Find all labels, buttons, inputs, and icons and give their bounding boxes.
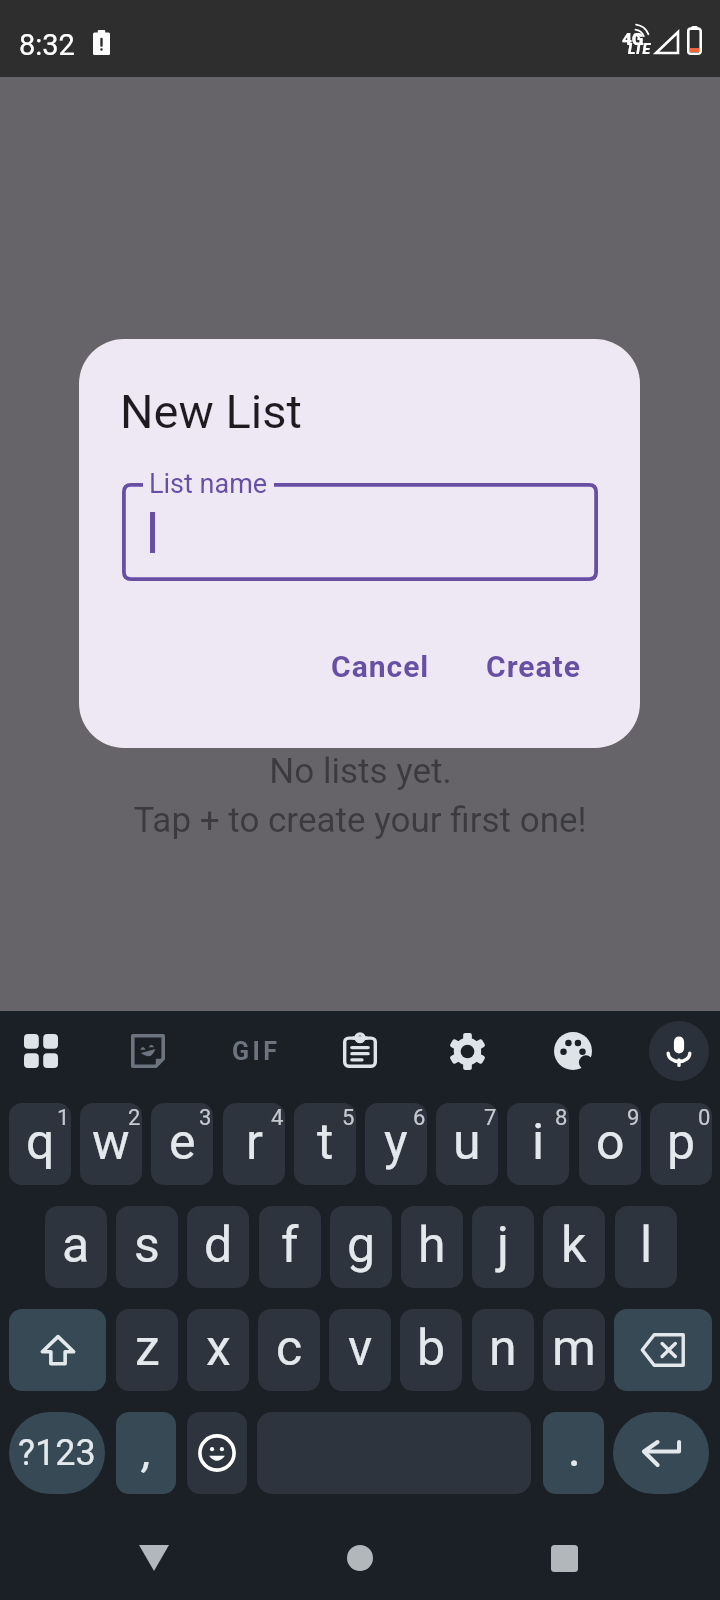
button[interactable]: f — [259, 1206, 321, 1288]
staticText: e — [169, 1113, 196, 1172]
button[interactable]: Shift — [9, 1309, 106, 1391]
staticText: l — [640, 1216, 653, 1275]
staticText: 3 — [199, 1105, 212, 1131]
staticText: c — [276, 1319, 303, 1378]
button[interactable]: Hide keyboard — [124, 1528, 184, 1588]
button[interactable]: ?123 — [9, 1412, 105, 1494]
staticText: LTE — [628, 41, 651, 57]
button[interactable]: a — [45, 1206, 107, 1288]
staticText: Tap + to create your first one! — [133, 800, 587, 841]
button[interactable]: Create — [464, 635, 603, 698]
staticText: y — [384, 1113, 408, 1172]
staticText: i — [532, 1113, 545, 1172]
staticText: 9 — [627, 1105, 640, 1131]
staticText: . — [569, 1433, 580, 1475]
button[interactable]: m — [543, 1309, 605, 1391]
staticText: 4 — [271, 1105, 284, 1131]
staticText: List name — [149, 468, 268, 500]
staticText: No lists yet. — [269, 751, 452, 792]
button[interactable]: l — [615, 1206, 677, 1288]
button[interactable]: . — [543, 1412, 604, 1494]
button[interactable]: s — [116, 1206, 178, 1288]
button[interactable]: Voice input — [649, 1021, 709, 1081]
staticText: p — [667, 1113, 696, 1172]
staticText: s — [134, 1216, 160, 1275]
staticText: 4G — [622, 29, 644, 49]
staticText: 0 — [698, 1105, 711, 1131]
staticText: x — [206, 1319, 231, 1378]
staticText: , — [143, 1433, 152, 1475]
staticText: d — [204, 1216, 233, 1275]
staticText: g — [347, 1216, 376, 1275]
button[interactable]: b — [400, 1309, 462, 1391]
staticText: 8 — [555, 1105, 568, 1131]
staticText: b — [417, 1319, 446, 1378]
button[interactable]: g — [330, 1206, 392, 1288]
button[interactable]: Clipboard — [330, 1021, 390, 1081]
staticText: z — [135, 1319, 160, 1378]
button[interactable]: Backspace — [614, 1309, 712, 1391]
button[interactable]: j — [472, 1206, 534, 1288]
staticText: 1 — [57, 1105, 70, 1131]
staticText: ?123 — [18, 1432, 96, 1474]
staticText: 5 — [342, 1105, 355, 1131]
staticText: n — [489, 1319, 517, 1378]
button[interactable]: d — [187, 1206, 249, 1288]
button[interactable]: GIF — [226, 1021, 286, 1081]
button[interactable]: x — [187, 1309, 249, 1391]
button[interactable]: Cancel — [309, 635, 452, 698]
staticText: Cancel — [331, 649, 430, 684]
staticText: Create — [486, 649, 581, 684]
button[interactable]: r — [223, 1103, 285, 1185]
button[interactable]: y — [365, 1103, 427, 1185]
button[interactable]: p — [650, 1103, 712, 1185]
staticText: 8:32 — [19, 28, 75, 62]
button[interactable]: v — [329, 1309, 391, 1391]
button[interactable]: w — [80, 1103, 142, 1185]
staticText: t — [317, 1113, 334, 1172]
button[interactable]: Theme — [543, 1021, 603, 1081]
button[interactable]: e — [151, 1103, 213, 1185]
button[interactable]: q — [9, 1103, 71, 1185]
button[interactable]: k — [543, 1206, 605, 1288]
staticText: r — [246, 1113, 263, 1172]
staticText: o — [596, 1113, 625, 1172]
button[interactable]: Apps — [11, 1021, 71, 1081]
button[interactable]: Recents — [534, 1528, 594, 1588]
button[interactable]: t — [294, 1103, 356, 1185]
staticText: a — [62, 1216, 90, 1275]
staticText: q — [26, 1113, 55, 1172]
button[interactable]: , — [116, 1412, 176, 1494]
staticText: 6 — [413, 1105, 426, 1131]
staticText: j — [497, 1216, 509, 1275]
staticText: New List — [120, 384, 302, 439]
button[interactable]: Settings — [437, 1021, 497, 1081]
button[interactable]: o — [579, 1103, 641, 1185]
staticText: f — [281, 1216, 299, 1275]
button[interactable]: c — [258, 1309, 320, 1391]
staticText: m — [552, 1319, 596, 1378]
staticText: 7 — [484, 1105, 497, 1131]
staticText: v — [348, 1319, 373, 1378]
button[interactable]: Home — [330, 1528, 390, 1588]
staticText: GIF — [232, 1037, 281, 1066]
button[interactable]: h — [401, 1206, 463, 1288]
staticText: w — [92, 1113, 130, 1172]
staticText: h — [418, 1216, 446, 1275]
button[interactable]: z — [116, 1309, 178, 1391]
button[interactable]: Emoji — [187, 1412, 247, 1494]
staticText: 2 — [128, 1105, 141, 1131]
button[interactable]: Stickers — [118, 1021, 178, 1081]
button[interactable]: u — [436, 1103, 498, 1185]
staticText: k — [561, 1216, 587, 1275]
button[interactable]: Enter — [613, 1412, 709, 1494]
button[interactable]: i — [507, 1103, 569, 1185]
staticText: u — [453, 1113, 481, 1172]
button[interactable]: n — [472, 1309, 534, 1391]
